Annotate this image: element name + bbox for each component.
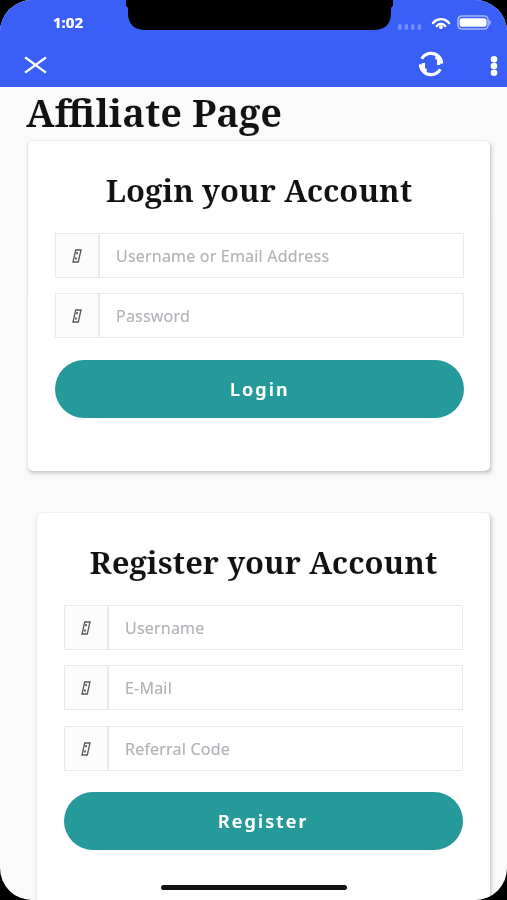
staticText: 1:02 [53,12,83,32]
button[interactable]: Username [64,605,463,650]
button[interactable]: E-Mail [64,665,463,710]
staticText: Register [218,809,309,834]
button[interactable]: Username or Email Address [55,233,464,278]
button[interactable]: More options [477,49,507,83]
button[interactable]: Password [55,293,464,338]
button[interactable]: Referral Code [64,726,463,771]
staticText: E-Mail [125,677,172,699]
staticText: Username or Email Address [116,245,330,267]
staticText: Password [116,305,190,327]
staticText: Login your Account [28,169,490,211]
button[interactable]: Register [64,792,463,850]
button[interactable]: Refresh [407,40,455,88]
staticText: Affiliate Page [26,86,283,138]
staticText: Register your Account [37,541,490,583]
staticText: Login [230,377,290,402]
button[interactable]: Close [15,44,56,85]
button[interactable]: Login [55,360,464,418]
staticText: Referral Code [125,738,230,760]
staticText: Username [125,617,205,639]
